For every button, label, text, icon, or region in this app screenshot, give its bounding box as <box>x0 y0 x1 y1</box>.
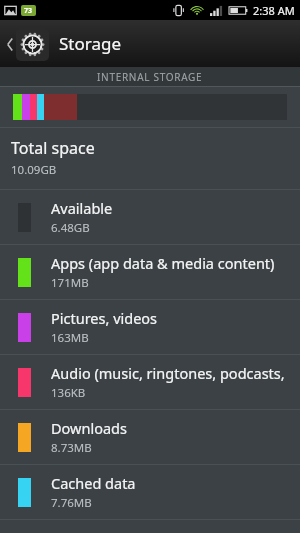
staticText: Pictures, videos <box>51 308 158 328</box>
staticText: Cached data <box>51 473 136 493</box>
staticText: Total space <box>11 137 95 159</box>
staticText: 136KB <box>51 385 86 401</box>
staticText: 6.48GB <box>51 220 90 236</box>
staticText: 171MB <box>51 275 89 291</box>
staticText: Storage <box>59 32 122 55</box>
button[interactable]: Downloads <box>0 410 300 464</box>
staticText: 73 <box>24 6 33 16</box>
staticText: 163MB <box>51 330 89 346</box>
staticText: INTERNAL STORAGE <box>97 70 203 84</box>
button[interactable]: Available <box>0 190 300 244</box>
button[interactable]: Back <box>0 24 51 64</box>
other: Back <box>4 24 16 64</box>
staticText: 7.76MB <box>51 495 92 511</box>
staticText: Downloads <box>51 418 127 438</box>
button[interactable]: Apps (app data & media content) <box>0 245 300 299</box>
staticText: 8.73MB <box>51 440 92 456</box>
button[interactable]: Audio (music, ringtones, podcasts, <box>0 355 300 409</box>
button[interactable]: Total space <box>0 128 300 189</box>
staticText: Apps (app data & media content) <box>51 253 275 273</box>
staticText: Audio (music, ringtones, podcasts, <box>51 363 285 383</box>
button[interactable]: Cached data <box>0 465 300 519</box>
staticText: 10.09GB <box>11 162 57 178</box>
staticText: Available <box>51 198 113 218</box>
button[interactable]: Pictures, videos <box>0 300 300 354</box>
staticText: 2:38 AM <box>253 3 295 18</box>
